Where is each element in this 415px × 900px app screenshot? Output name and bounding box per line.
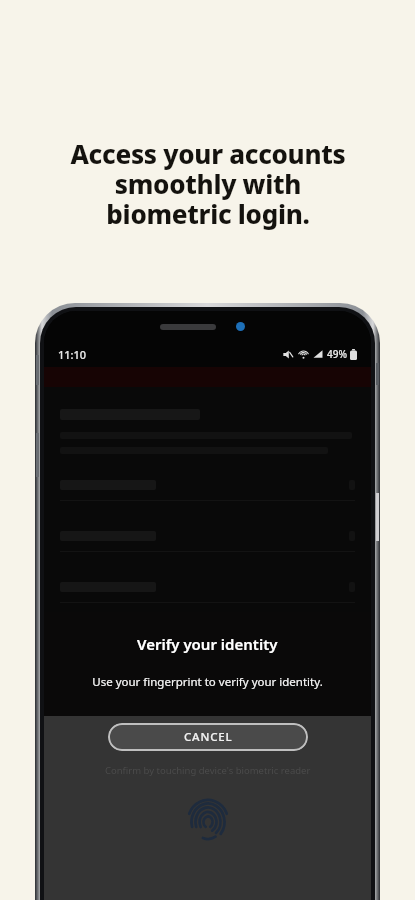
staticText: Verify your identity	[137, 634, 278, 654]
staticText: Access your accounts smoothly with biome…	[70, 136, 346, 231]
staticText: 11:10	[58, 347, 87, 362]
staticText: CANCEL	[184, 729, 233, 745]
staticText: Use your fingerprint to verify your iden…	[92, 674, 323, 690]
button[interactable]: Fingerprint sensor	[181, 793, 235, 847]
button[interactable]: CANCEL	[108, 723, 308, 751]
staticText: 49%	[327, 347, 347, 361]
staticText: Confirm by touching device's biometric r…	[105, 764, 311, 777]
